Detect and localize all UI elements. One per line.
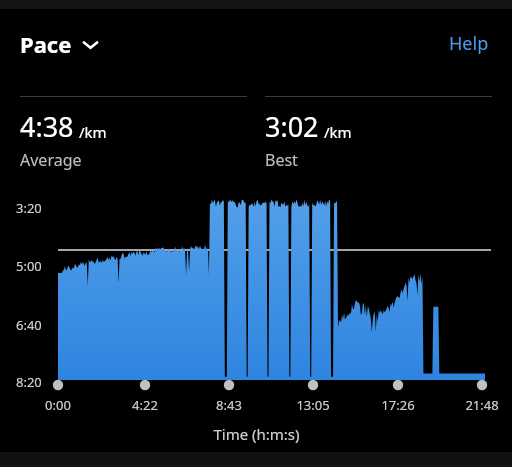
staticText: 3:20 — [16, 199, 42, 217]
staticText: 8:43 — [216, 396, 242, 414]
staticText: Pace — [20, 29, 72, 59]
button[interactable]: Pace — [20, 27, 99, 61]
staticText: /km — [79, 122, 107, 142]
other: Change metric — [82, 39, 99, 50]
staticText: 0:00 — [45, 396, 71, 414]
button[interactable]: 4:38 — [20, 96, 247, 171]
staticText: 4:22 — [132, 396, 158, 414]
staticText: Best — [265, 149, 298, 171]
staticText: 21:48 — [465, 396, 499, 414]
button[interactable]: Help — [446, 26, 492, 61]
staticText: 6:40 — [16, 316, 42, 334]
staticText: Time (h:m:s) — [213, 424, 300, 444]
staticText: 3:02 — [265, 108, 319, 145]
staticText: Average — [20, 149, 82, 171]
button[interactable]: 3:02 — [265, 96, 492, 171]
staticText: 17:26 — [381, 396, 415, 414]
staticText: Help — [449, 31, 489, 56]
staticText: 13:05 — [296, 396, 330, 414]
staticText: 5:00 — [16, 257, 42, 275]
staticText: 8:20 — [16, 373, 42, 391]
staticText: 4:38 — [20, 108, 74, 145]
staticText: /km — [324, 122, 352, 142]
